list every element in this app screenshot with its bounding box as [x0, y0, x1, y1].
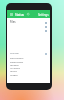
- staticText: Downloads: [10, 60, 24, 63]
- button[interactable]: Action 1: [44, 21, 47, 24]
- button[interactable]: Settings: [38, 13, 49, 17]
- staticText: Music: [10, 69, 17, 72]
- button[interactable]: Downloads: [7, 60, 50, 63]
- button[interactable]: Action 3: [44, 29, 47, 32]
- button[interactable]: Action 2: [44, 25, 47, 28]
- button[interactable]: Archives: [7, 66, 50, 69]
- staticText: Status: [15, 13, 25, 17]
- staticText: Videos: [10, 73, 18, 76]
- button[interactable]: Account: [44, 52, 47, 55]
- button[interactable]: Documents: [7, 56, 50, 59]
- staticText: Storage: [10, 51, 19, 54]
- staticText: Images: [10, 63, 19, 66]
- staticText: Settings: [38, 13, 49, 17]
- button[interactable]: Search: [27, 13, 30, 16]
- button[interactable]: Status: [15, 13, 25, 17]
- staticText: Archives: [10, 66, 20, 69]
- button[interactable]: Images: [7, 63, 50, 66]
- button[interactable]: Music: [7, 69, 50, 72]
- staticText: Files: [10, 20, 16, 24]
- button[interactable]: Videos: [7, 73, 50, 76]
- button[interactable]: Navigation menu: [9, 12, 14, 17]
- staticText: Documents: [10, 56, 24, 59]
